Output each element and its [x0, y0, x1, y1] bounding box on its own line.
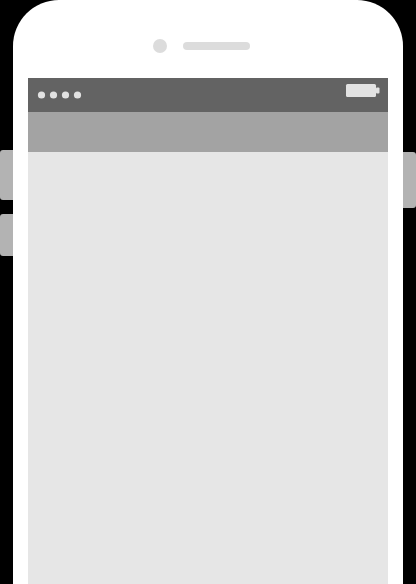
button[interactable]: Power [402, 152, 416, 208]
button[interactable]: Volume up [0, 150, 14, 200]
button[interactable]: Volume down [0, 214, 14, 256]
